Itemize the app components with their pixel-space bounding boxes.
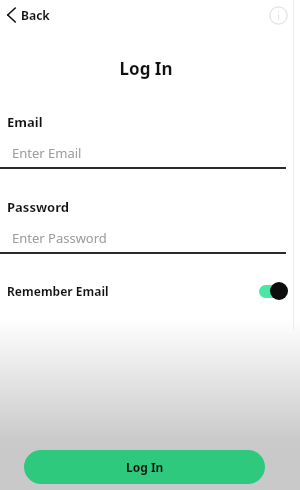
button[interactable]: Log In [24,450,265,484]
staticText: Password [7,198,69,216]
staticText: Remember Email [7,283,109,299]
staticText: Log In [126,459,164,475]
button[interactable]: Back [0,0,60,30]
staticText: Log In [0,57,292,80]
button[interactable]: Enter Email [0,143,300,163]
staticText: Back [21,7,50,23]
staticText: Enter Email [12,144,82,162]
staticText: Enter Password [12,229,107,247]
button[interactable]: Info [269,6,288,25]
button[interactable]: Enter Password [0,228,300,248]
staticText: Email [7,113,43,131]
button[interactable]: Remember Email [0,278,300,304]
